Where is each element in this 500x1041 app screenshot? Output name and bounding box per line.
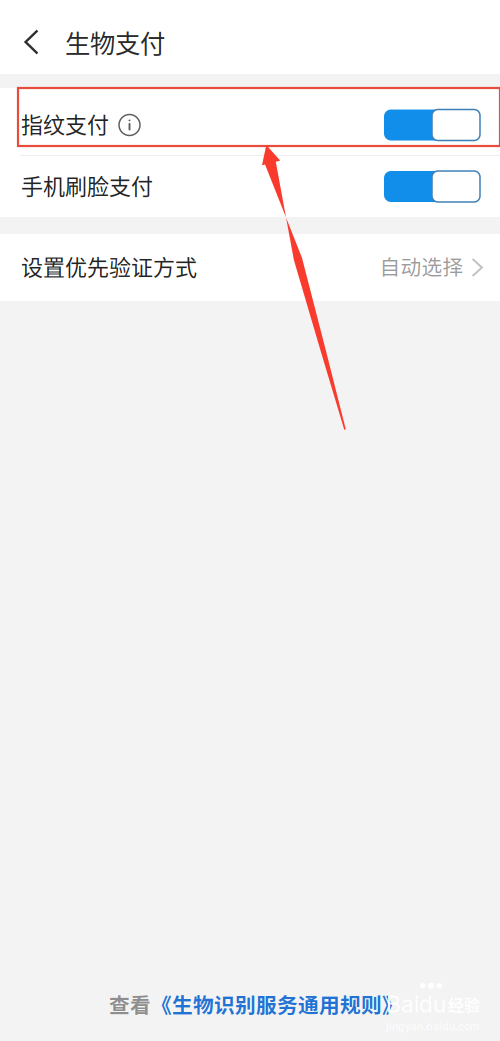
staticText: 手机刷脸支付 — [21, 169, 153, 201]
staticText: 生物支付 — [65, 24, 165, 60]
button[interactable]: 指纹支付 — [0, 88, 500, 155]
staticText: 指纹支付 — [21, 108, 109, 139]
staticText: 查看 — [109, 989, 151, 1019]
staticText: 《生物识别服务通用规则》 — [151, 989, 403, 1019]
button[interactable]: 设置优先验证方式 — [0, 234, 500, 301]
staticText: 自动选择 — [379, 251, 463, 281]
staticText: 经验 — [448, 993, 480, 1016]
staticText: Baidu — [386, 990, 446, 1018]
button[interactable]: Back — [0, 10, 52, 74]
staticText: 设置优先验证方式 — [21, 250, 197, 282]
button[interactable]: 手机刷脸支付 — [0, 156, 500, 217]
button[interactable]: 查看 — [103, 989, 397, 1019]
